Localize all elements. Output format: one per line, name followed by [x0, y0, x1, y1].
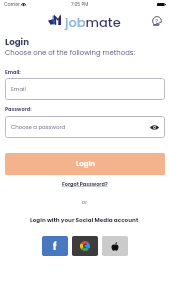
staticText: Email [11, 85, 26, 93]
staticText: Carrier [4, 1, 20, 7]
staticText: Choose one of the following methods: [5, 48, 135, 58]
staticText: or [82, 199, 88, 206]
button[interactable]: Email [5, 78, 165, 100]
staticText: Login with your Social Media account [30, 216, 139, 224]
staticText: ? [155, 17, 159, 25]
staticText: Password: [5, 106, 32, 113]
button[interactable]: Choose a password [5, 116, 165, 138]
staticText: Login [5, 36, 29, 48]
button[interactable]: Login [5, 153, 165, 175]
button[interactable]: Sign in with Apple [102, 236, 128, 256]
staticText: Choose a password [11, 123, 66, 131]
button[interactable]: Sign in with Facebook [42, 236, 68, 256]
staticText: f [53, 240, 57, 253]
staticText: Email: [5, 69, 21, 76]
staticText: jobmate [65, 13, 121, 31]
button[interactable]: Sign in with Google [72, 236, 98, 256]
other: Show password [150, 125, 159, 130]
staticText: 7:05 PM [71, 1, 89, 7]
button[interactable]: Forgot Password? [62, 181, 108, 188]
button[interactable]: Help [151, 15, 162, 26]
staticText: Login [76, 159, 95, 169]
